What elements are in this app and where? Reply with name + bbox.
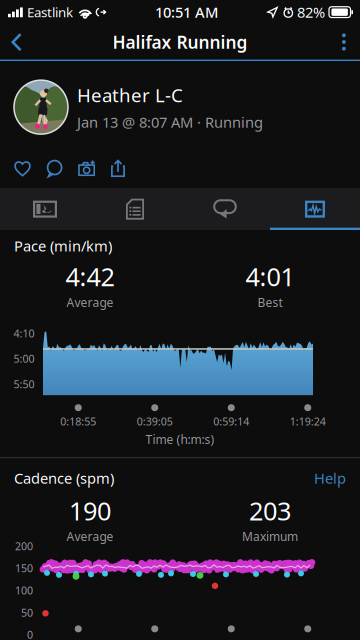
staticText: 203 [249,494,291,527]
staticText: 5:50 [13,377,34,391]
staticText: Cadence (spm) [14,468,114,488]
staticText: 0 [27,628,33,640]
button[interactable]: Charts [270,188,360,230]
staticText: 0:18:55 [60,414,96,428]
staticText: 1:19:24 [290,414,326,428]
staticText: 50 [21,605,33,620]
staticText: 190 [69,494,111,527]
button[interactable]: More options [328,25,360,59]
staticText: Eastlink [27,3,73,21]
staticText: 4:10 [13,326,34,340]
staticText: 100 [15,583,33,597]
staticText: Halifax Running [112,31,247,54]
staticText: 4:42 [65,260,114,293]
staticText: Pace (min/km) [14,236,112,256]
button[interactable]: Map [0,188,90,230]
staticText: 0:39:05 [137,414,173,428]
staticText: 150 [15,561,33,575]
button[interactable]: Help [314,466,360,490]
button[interactable]: Comment [46,159,63,178]
button[interactable]: Back [0,25,35,60]
button[interactable]: Laps [180,188,270,230]
button[interactable]: Share [111,159,125,178]
button[interactable]: Add photo [78,159,96,178]
staticText: 4:01 [245,260,294,293]
staticText: Average [66,528,113,544]
staticText: 82% [297,2,325,22]
staticText: Time (h:m:s) [145,431,214,447]
staticText: 5:00 [13,352,34,366]
staticText: Maximum [242,528,298,544]
staticText: Jan 13 @ 8:07 AM · Running [77,112,263,132]
staticText: Average [66,294,113,310]
staticText: Best [257,294,282,310]
button[interactable]: Details [90,188,180,230]
staticText: 0:59:14 [213,414,249,428]
staticText: 10:51 AM [155,2,218,22]
staticText: Help [314,468,346,488]
staticText: 200 [15,539,33,553]
staticText: Heather L-C [77,82,183,107]
button[interactable]: Like [14,158,31,178]
